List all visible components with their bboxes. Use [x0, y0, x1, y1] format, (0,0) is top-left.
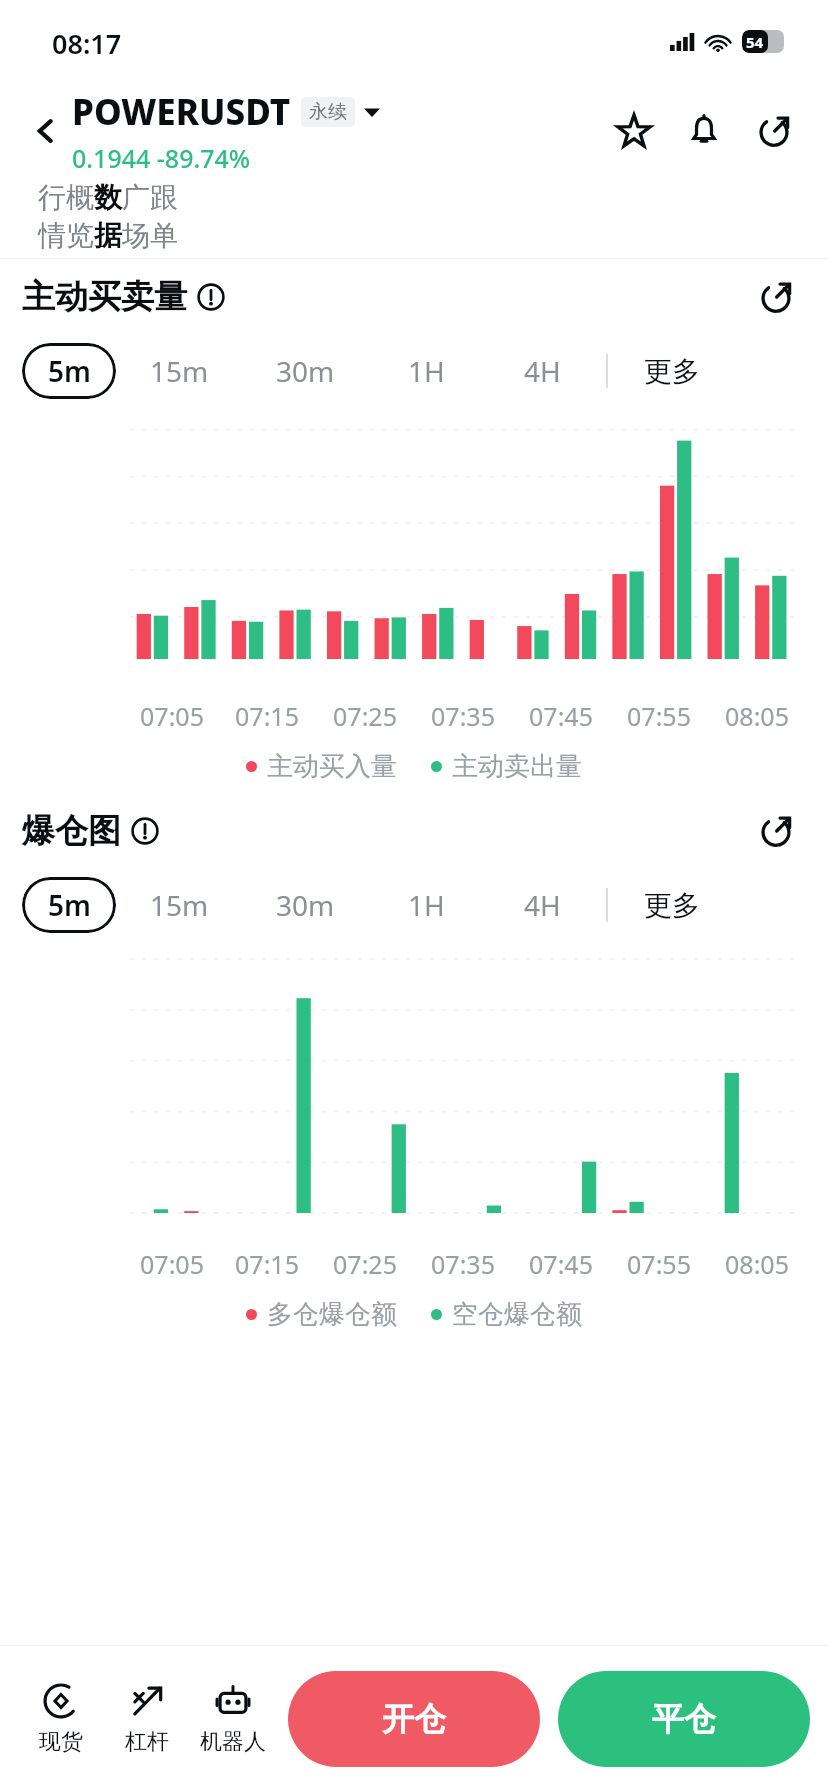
staticText: 07:15 [235, 699, 299, 733]
staticText: 07:25 [333, 699, 397, 733]
staticText: 空仓爆仓额 [452, 1298, 582, 1331]
button[interactable]: 15m [116, 343, 242, 399]
staticText: 07:35 [431, 1247, 495, 1281]
staticText: 07:55 [627, 699, 691, 733]
button[interactable]: 行情 [24, 180, 52, 258]
staticText: 现货 [39, 1728, 83, 1756]
staticText: 多仓爆仓额 [267, 1298, 397, 1331]
staticText: 07:55 [627, 1247, 691, 1281]
staticText: POWERUSDT [72, 88, 291, 136]
staticText: 0.1944 -89.74% [72, 141, 251, 175]
staticText: 主动买卖量 [22, 276, 187, 318]
button[interactable]: Expand chart [750, 271, 802, 323]
button[interactable]: 更多 [644, 888, 700, 923]
staticText: 1H [408, 352, 445, 390]
staticText: 07:05 [140, 699, 204, 733]
button[interactable]: 跟单 [136, 180, 164, 258]
button[interactable]: 广场 [108, 180, 136, 258]
button[interactable]: 机器人 [190, 1676, 276, 1762]
staticText: 平仓 [652, 1699, 716, 1739]
button[interactable]: 机器人 [164, 180, 192, 258]
button[interactable]: 4H [484, 877, 600, 933]
staticText: 4H [524, 352, 561, 390]
staticText: 07:45 [529, 1247, 593, 1281]
staticText: 07:05 [140, 1247, 204, 1281]
staticText: 15m [150, 886, 209, 924]
button[interactable]: 5m [22, 343, 116, 399]
button[interactable]: Back [18, 103, 74, 159]
staticText: 4H [524, 886, 561, 924]
button[interactable]: 1H [368, 343, 484, 399]
staticText: 07:35 [431, 699, 495, 733]
staticText: 永续 [309, 100, 347, 124]
staticText: 更多 [644, 354, 700, 389]
button[interactable]: 数据 [80, 180, 108, 258]
button[interactable]: 开仓 [288, 1671, 540, 1767]
staticText: 机器人 [200, 1728, 266, 1756]
staticText: 爆仓图 [22, 810, 121, 852]
button[interactable]: 概览 [52, 180, 80, 258]
button[interactable]: 1H [368, 877, 484, 933]
staticText: 2.50万 [34, 931, 106, 932]
button[interactable]: Expand chart [750, 805, 802, 857]
staticText: 开仓 [382, 1699, 446, 1739]
staticText: 08:05 [725, 699, 789, 733]
button[interactable]: 30m [242, 343, 368, 399]
staticText: 5m [48, 352, 91, 390]
button[interactable]: 平仓 [558, 1671, 810, 1767]
button[interactable]: 15m [116, 877, 242, 933]
button[interactable]: 4H [484, 343, 600, 399]
staticText: 07:45 [529, 699, 593, 733]
staticText: 更多 [644, 888, 700, 923]
staticText: 250.0万 [34, 397, 120, 398]
button[interactable]: 现货 [18, 1676, 104, 1762]
button[interactable]: 30m [242, 877, 368, 933]
staticText: 30m [276, 352, 335, 390]
staticText: 15m [150, 352, 209, 390]
button[interactable]: Share [748, 105, 800, 157]
staticText: 1H [408, 886, 445, 924]
staticText: 07:25 [333, 1247, 397, 1281]
staticText: 主动买入量 [267, 750, 397, 783]
button[interactable]: 5m [22, 877, 116, 933]
staticText: 54 [746, 32, 764, 52]
staticText: 杠杆 [125, 1728, 169, 1756]
staticText: 5m [48, 886, 91, 924]
staticText: 主动卖出量 [452, 750, 582, 783]
staticText: 30m [276, 886, 335, 924]
staticText: 08:17 [52, 25, 122, 62]
button[interactable]: Alerts [678, 105, 730, 157]
staticText: 07:15 [235, 1247, 299, 1281]
button[interactable]: 更多 [644, 354, 700, 389]
button[interactable]: 杠杆 [104, 1676, 190, 1762]
button[interactable]: Favorite [608, 105, 660, 157]
staticText: 08:05 [725, 1247, 789, 1281]
